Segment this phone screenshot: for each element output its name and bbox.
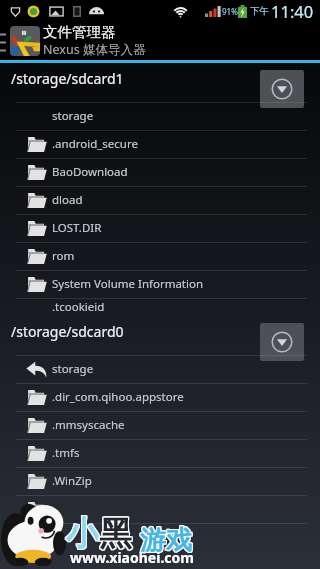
button[interactable] — [0, 523, 320, 551]
staticText: 游 — [141, 525, 167, 558]
staticText: LOST.DIR — [52, 220, 102, 236]
staticText: .tmfs — [52, 445, 80, 461]
staticText: 下午 — [250, 5, 269, 17]
button[interactable]: Expand folder list — [260, 323, 304, 361]
button[interactable]: dload — [0, 186, 320, 214]
staticText: www.xiaohei.com — [70, 548, 194, 567]
staticText: 小 — [65, 512, 98, 554]
staticText: .WinZip — [52, 473, 92, 489]
staticText: 戏 — [167, 523, 193, 556]
staticText: 戏 — [166, 523, 192, 556]
staticText: 戏 — [166, 525, 192, 558]
staticText: 黑 — [99, 514, 132, 556]
staticText: dload — [52, 192, 83, 208]
staticText: Nexus 媒体导入器 — [43, 41, 146, 58]
button[interactable]: .mmsyscache — [0, 411, 320, 439]
staticText: 小 — [65, 513, 98, 555]
staticText: 91% — [222, 6, 238, 17]
staticText: 游 — [139, 523, 165, 556]
button[interactable]: System Volume Information — [0, 270, 320, 298]
staticText: 黑 — [100, 513, 133, 555]
staticText: System Volume Information — [52, 276, 204, 292]
staticText: 游 — [140, 524, 166, 557]
staticText: 戏 — [166, 524, 192, 557]
button[interactable]: .android_secure — [0, 130, 320, 158]
staticText: storage — [52, 108, 94, 124]
button[interactable]: .tmfs — [0, 439, 320, 467]
staticText: 黑 — [100, 512, 133, 554]
staticText: 戏 — [165, 525, 191, 558]
staticText: .dir_com.qihoo.appstore — [52, 389, 184, 405]
staticText: 黑 — [100, 514, 133, 556]
staticText: 戏 — [167, 525, 193, 558]
staticText: 戏 — [167, 524, 193, 557]
staticText: 小 — [66, 514, 99, 556]
button[interactable]: storage — [0, 355, 320, 383]
staticText: .tcookieid — [52, 299, 105, 315]
staticText: rom — [52, 248, 75, 264]
staticText: 小 — [67, 514, 100, 556]
staticText: 黑 — [99, 513, 132, 555]
staticText: 小 — [65, 514, 98, 556]
staticText: /storage/sdcard1 — [11, 69, 124, 88]
button[interactable]: 文件管理器 — [0, 22, 320, 60]
staticText: 游 — [140, 523, 166, 556]
staticText: 游 — [139, 525, 165, 558]
staticText: 戏 — [165, 524, 191, 557]
staticText: 小 — [67, 513, 100, 555]
staticText: 文件管理器 — [43, 23, 116, 41]
button[interactable]: LOST.DIR — [0, 214, 320, 242]
staticText: 11:40 — [271, 0, 314, 22]
button[interactable]: .WinZip — [0, 467, 320, 495]
staticText: 游 — [139, 524, 165, 557]
staticText: 小 — [67, 512, 100, 554]
staticText: 游 — [141, 523, 167, 556]
staticText: BaoDownload — [52, 164, 128, 180]
button[interactable] — [0, 495, 320, 523]
staticText: .mmsyscache — [52, 417, 125, 433]
staticText: 黑 — [98, 514, 131, 556]
button[interactable]: Expand folder list — [260, 70, 304, 108]
button[interactable]: storage — [0, 102, 320, 130]
staticText: 黑 — [99, 512, 132, 554]
staticText: 游 — [140, 525, 166, 558]
staticText: 游 — [141, 524, 167, 557]
staticText: .android_secure — [52, 136, 138, 152]
button[interactable]: .tcookieid — [0, 298, 320, 316]
button[interactable]: rom — [0, 242, 320, 270]
button[interactable]: .dir_com.qihoo.appstore — [0, 383, 320, 411]
staticText: 黑 — [98, 513, 131, 555]
staticText: 黑 — [98, 512, 131, 554]
staticText: /storage/sdcard0 — [11, 322, 124, 341]
staticText: 小 — [66, 512, 99, 554]
staticText: 戏 — [165, 523, 191, 556]
button[interactable]: BaoDownload — [0, 158, 320, 186]
staticText: 小 — [66, 513, 99, 555]
staticText: storage — [52, 361, 94, 377]
